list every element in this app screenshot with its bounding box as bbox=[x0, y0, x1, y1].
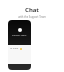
staticText: with the Support Team bbox=[18, 15, 46, 19]
staticText: Hi there bbox=[10, 47, 19, 50]
staticText: Support Team bbox=[12, 34, 27, 37]
staticText: Chat bbox=[25, 6, 39, 14]
